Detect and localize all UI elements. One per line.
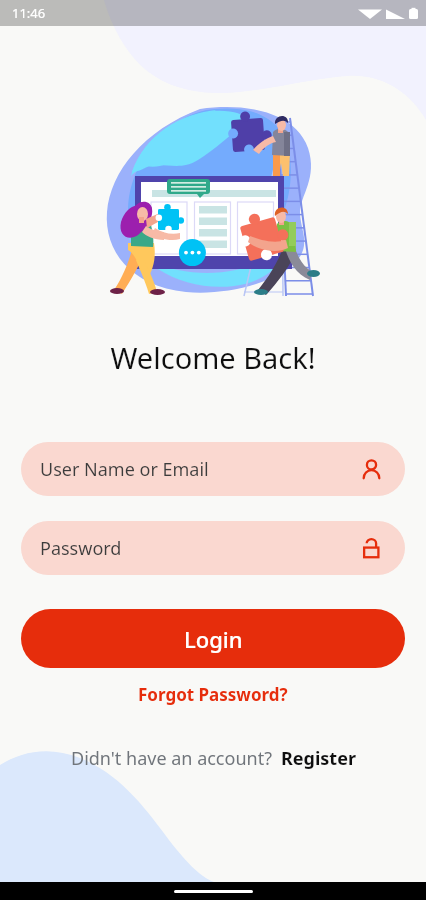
staticText: Password	[40, 536, 122, 561]
staticText: User Name or Email	[40, 457, 209, 482]
staticText: Register	[281, 746, 356, 771]
staticText: Forgot Password?	[138, 683, 288, 706]
other: User	[360, 458, 383, 481]
staticText: Login	[184, 624, 243, 654]
button[interactable]: Register	[281, 746, 356, 771]
staticText: Didn't have an account?	[71, 746, 272, 771]
button[interactable]: Forgot Password?	[128, 678, 298, 711]
button[interactable]: User Name or Email	[21, 442, 405, 496]
staticText: Welcome Back!	[0, 338, 426, 377]
other: Show password	[360, 537, 383, 560]
button[interactable]: Login	[21, 609, 405, 668]
button[interactable]: Password	[21, 521, 405, 575]
staticText: 11:46	[12, 4, 46, 22]
